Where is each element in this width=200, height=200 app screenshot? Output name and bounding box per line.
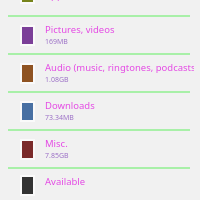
staticText: Apps: [45, 0, 68, 2]
staticText: 1.08GB: [45, 75, 69, 85]
button[interactable]: Available: [0, 169, 200, 196]
staticText: Pictures, videos: [45, 23, 115, 36]
button[interactable]: Misc.: [0, 131, 200, 167]
staticText: 7.85GB: [45, 151, 69, 161]
staticText: Audio (music, ringtones, podcasts): [45, 61, 194, 74]
staticText: 73.34MB: [45, 113, 74, 123]
button[interactable]: Pictures, videos: [0, 17, 200, 53]
button[interactable]: Downloads: [0, 93, 200, 129]
staticText: 169MB: [45, 37, 68, 47]
staticText: Misc.: [45, 137, 68, 150]
staticText: Available: [45, 175, 86, 188]
staticText: Downloads: [45, 99, 95, 112]
button[interactable]: Apps: [0, 0, 200, 15]
button[interactable]: Audio (music, ringtones, podcasts): [0, 55, 200, 91]
